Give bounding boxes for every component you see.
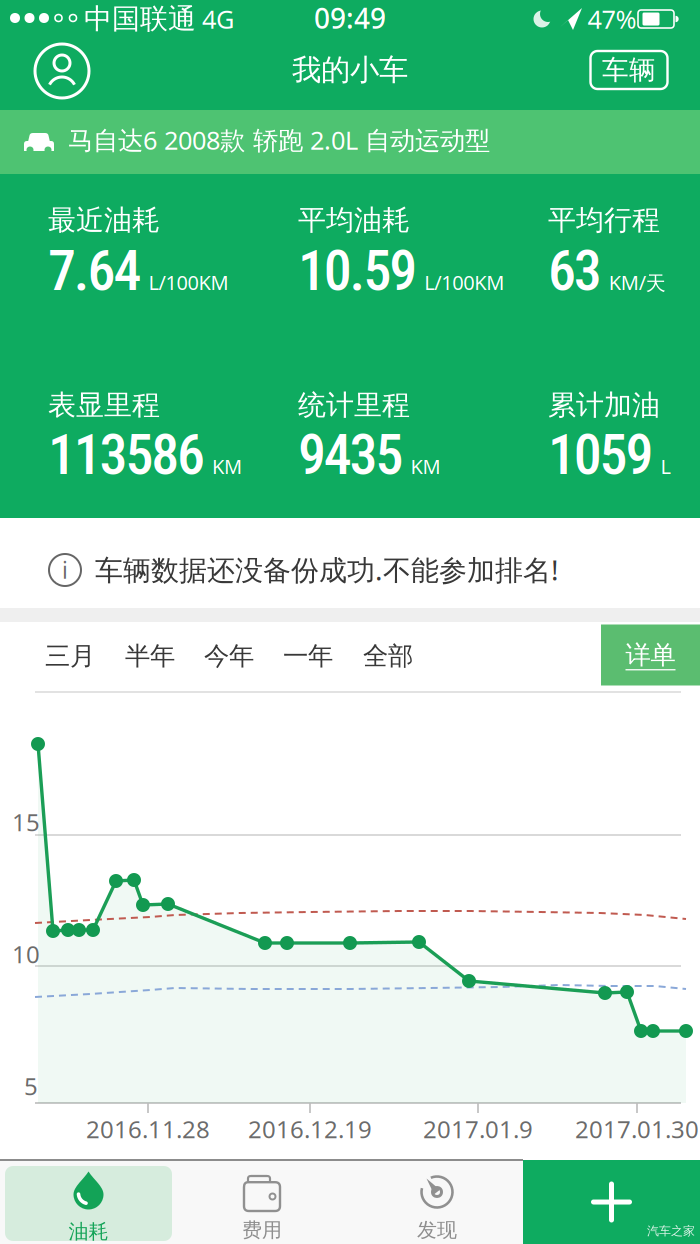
staticText: L/100KM bbox=[148, 269, 228, 295]
staticText: 平均行程 bbox=[548, 203, 660, 237]
staticText: 马自达6 2008款 轿跑 2.0L 自动运动型 bbox=[68, 123, 490, 157]
staticText: 发现 bbox=[417, 1218, 457, 1242]
staticText: KM bbox=[212, 453, 242, 479]
staticText: 我的小车 bbox=[292, 52, 408, 88]
staticText: 中国联通 bbox=[84, 2, 196, 36]
button[interactable]: 今年 bbox=[204, 640, 254, 671]
staticText: 113586 bbox=[48, 422, 205, 488]
staticText: 今年 bbox=[204, 640, 254, 671]
button[interactable]: 全部 bbox=[363, 640, 413, 671]
staticText: 统计里程 bbox=[298, 388, 410, 422]
staticText: 详单 bbox=[625, 639, 675, 670]
staticText: 2016.11.28 bbox=[86, 1113, 210, 1145]
staticText: 最近油耗 bbox=[48, 203, 160, 237]
staticText: 累计加油 bbox=[548, 388, 660, 422]
staticText: 半年 bbox=[125, 640, 175, 671]
button[interactable] bbox=[523, 1160, 700, 1244]
staticText: 2017.01.30 bbox=[575, 1113, 699, 1145]
button[interactable]: 半年 bbox=[125, 640, 175, 671]
staticText: 表显里程 bbox=[48, 388, 160, 422]
staticText: 三月 bbox=[45, 640, 95, 671]
staticText: 汽车之家 bbox=[647, 1224, 695, 1238]
staticText: L/100KM bbox=[424, 269, 504, 295]
staticText: 车辆 bbox=[602, 54, 656, 86]
button[interactable]: 费用 bbox=[177, 1162, 347, 1242]
staticText: KM bbox=[410, 453, 440, 479]
staticText: 全部 bbox=[363, 640, 413, 671]
staticText: 1059 bbox=[548, 422, 653, 488]
staticText: 9435 bbox=[298, 422, 403, 488]
staticText: 7.64 bbox=[48, 238, 141, 304]
staticText: 2017.01.9 bbox=[423, 1113, 533, 1145]
button[interactable]: 三月 bbox=[45, 640, 95, 671]
staticText: 10 bbox=[12, 938, 40, 970]
staticText: i bbox=[62, 555, 68, 585]
staticText: 09:49 bbox=[314, 0, 386, 37]
button[interactable]: 油耗 bbox=[5, 1166, 172, 1241]
button[interactable]: 车辆 bbox=[590, 51, 667, 89]
staticText: 63 bbox=[548, 238, 602, 304]
staticText: 2016.12.19 bbox=[248, 1113, 372, 1145]
staticText: 15 bbox=[12, 806, 40, 838]
staticText: 一年 bbox=[283, 640, 333, 671]
button[interactable]: 马自达6 2008款 轿跑 2.0L 自动运动型 bbox=[0, 110, 700, 174]
button[interactable]: 一年 bbox=[283, 640, 333, 671]
staticText: 4G bbox=[202, 2, 234, 36]
staticText: 车辆数据还没备份成功.不能参加排名! bbox=[95, 551, 559, 588]
staticText: 47% bbox=[587, 2, 636, 36]
staticText: 10.59 bbox=[298, 238, 417, 304]
staticText: 油耗 bbox=[68, 1219, 108, 1244]
staticText: L bbox=[660, 453, 670, 479]
button[interactable]: 发现 bbox=[352, 1162, 522, 1242]
staticText: KM/天 bbox=[609, 269, 666, 296]
button[interactable] bbox=[35, 44, 89, 98]
staticText: 5 bbox=[24, 1070, 38, 1102]
button[interactable]: 详单 bbox=[601, 624, 700, 685]
staticText: 平均油耗 bbox=[298, 203, 410, 237]
staticText: 费用 bbox=[242, 1218, 282, 1242]
